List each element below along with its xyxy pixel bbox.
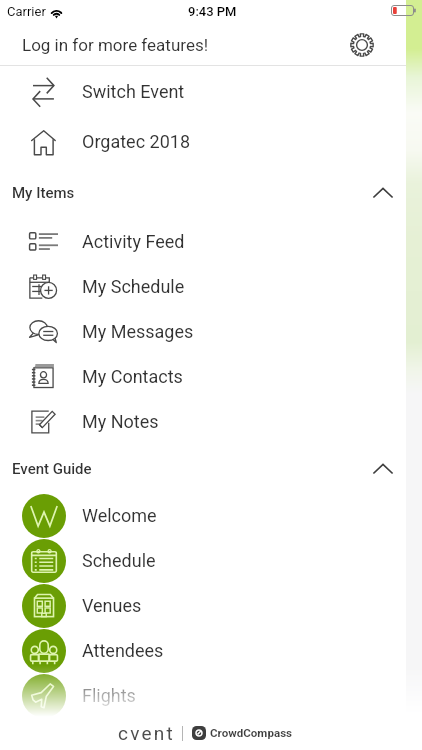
button[interactable]: Venues <box>0 583 422 628</box>
staticText: My Schedule <box>82 276 185 297</box>
staticText: My Notes <box>82 411 159 432</box>
staticText: Log in for more features! <box>22 35 209 55</box>
button[interactable]: Attendees <box>0 628 422 673</box>
button[interactable]: Switch Event <box>0 66 422 116</box>
staticText: My Items <box>12 184 75 202</box>
staticText: Schedule <box>82 550 156 571</box>
button[interactable]: My Schedule <box>0 264 422 309</box>
staticText: My Contacts <box>82 366 183 387</box>
staticText: My Messages <box>82 321 194 342</box>
button[interactable]: My Notes <box>0 399 422 444</box>
button[interactable]: Settings <box>346 29 378 61</box>
button[interactable]: Orgatec 2018 <box>0 116 422 166</box>
staticText: Venues <box>82 595 142 616</box>
staticText: Flights <box>82 685 136 706</box>
button[interactable]: My Contacts <box>0 354 422 399</box>
button[interactable]: My Items <box>0 166 422 219</box>
staticText: Activity Feed <box>82 231 185 252</box>
button[interactable]: Schedule <box>0 538 422 583</box>
staticText: Attendees <box>82 640 164 661</box>
staticText: Orgatec 2018 <box>82 131 190 152</box>
staticText: cvent <box>118 722 175 744</box>
staticText: CrowdCompass <box>210 726 293 740</box>
button[interactable]: Welcome <box>0 493 422 538</box>
button[interactable]: My Messages <box>0 309 422 354</box>
staticText: Event Guide <box>12 460 92 478</box>
button[interactable]: Event Guide <box>0 444 422 493</box>
button[interactable]: Flights <box>0 673 422 718</box>
staticText: Welcome <box>82 505 157 526</box>
staticText: 9:43 PM <box>188 4 237 19</box>
staticText: Switch Event <box>82 81 185 102</box>
button[interactable]: Activity Feed <box>0 219 422 264</box>
staticText: Carrier <box>7 4 46 19</box>
